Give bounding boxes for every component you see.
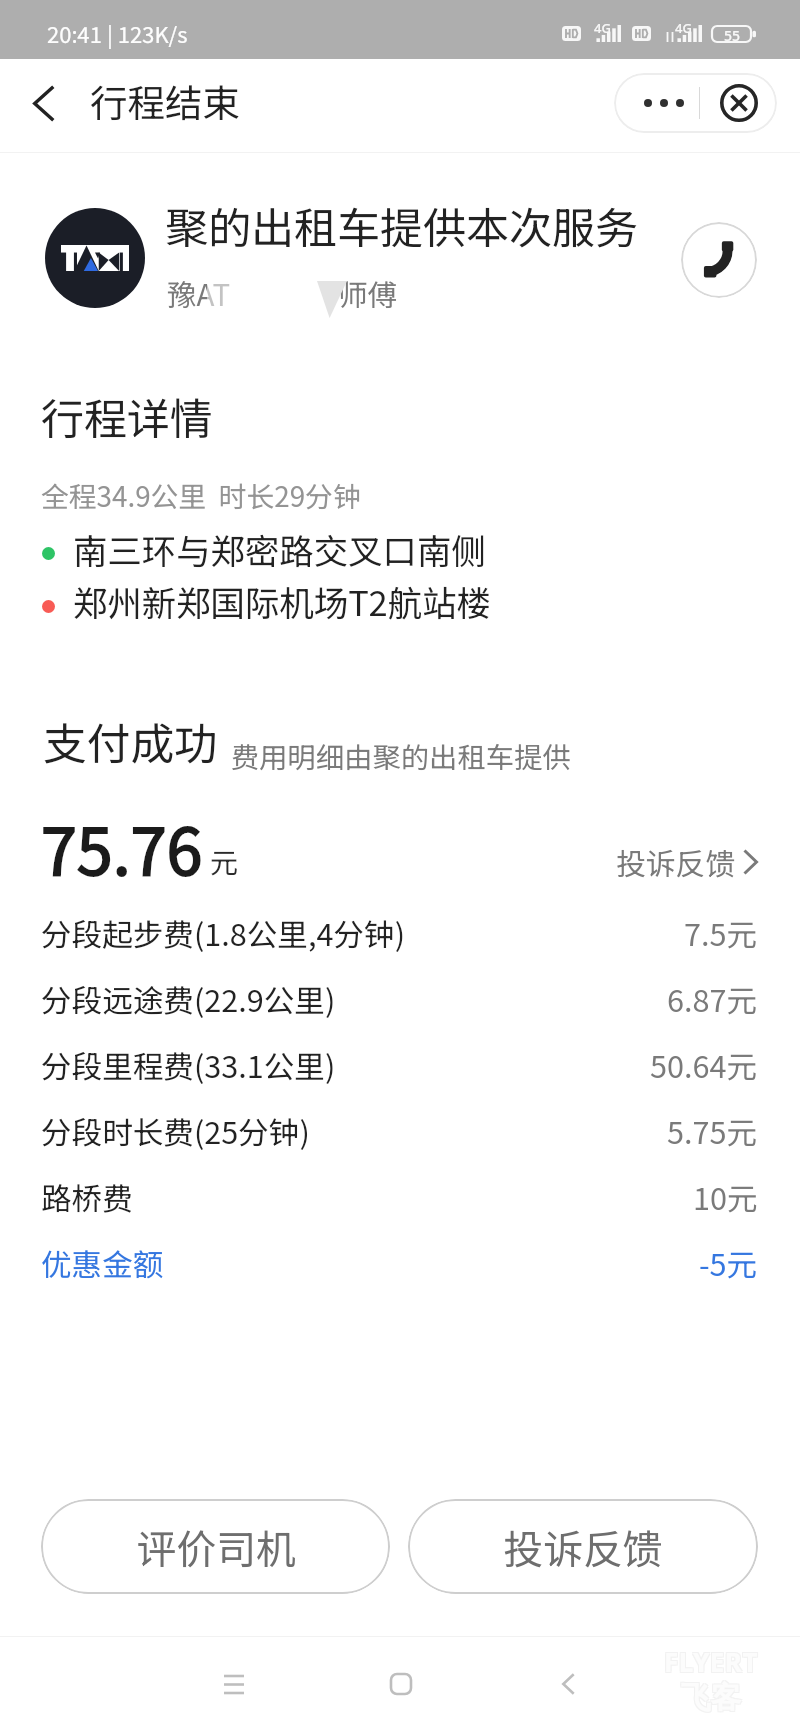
staticText: FLYERT	[663, 1643, 757, 1678]
staticText: 投诉反馈	[503, 1518, 663, 1576]
button[interactable]: 投诉反馈	[408, 1499, 758, 1594]
staticText: 费用明细由聚的出租车提供	[231, 735, 571, 776]
staticText: 飞客	[682, 1680, 742, 1718]
staticText: 元	[210, 841, 239, 882]
staticText: 4G	[675, 19, 692, 37]
staticText: 师傅	[338, 272, 398, 315]
staticText: 投诉反馈	[616, 840, 736, 883]
button[interactable]: 投诉反馈	[616, 840, 758, 883]
button[interactable]: 评价司机	[41, 1499, 390, 1594]
staticText: 55	[724, 26, 741, 42]
staticText: 分段时长费(25分钟)	[41, 1109, 310, 1153]
staticText: 全程34.9公里 时长29分钟	[41, 475, 361, 515]
button[interactable]: Back	[10, 69, 78, 137]
staticText: 飞客	[682, 1678, 742, 1716]
staticText: 支付成功	[43, 709, 218, 772]
button[interactable]: Close	[700, 73, 777, 133]
staticText: FLYERT	[665, 1645, 759, 1680]
button[interactable]: Recents	[184, 1634, 284, 1733]
staticText: 5.75元	[667, 1109, 758, 1153]
staticText: 分段远途费(22.9公里)	[41, 977, 336, 1021]
staticText: 路桥费	[41, 1175, 133, 1219]
staticText: 行程结束	[90, 73, 240, 127]
staticText: 分段起步费(1.8公里,4分钟)	[41, 911, 405, 955]
staticText: FLYERT	[664, 1644, 758, 1679]
staticText: 20:41 | 123K/s	[47, 17, 188, 49]
button[interactable]: Back	[518, 1634, 618, 1733]
staticText: 豫AT	[167, 272, 231, 315]
staticText: 南三环与郑密路交叉口南侧	[73, 524, 486, 574]
staticText: 75.76	[41, 800, 203, 894]
staticText: 10元	[693, 1175, 758, 1219]
staticText: 行程详情	[41, 385, 213, 447]
staticText: FLYERT	[663, 1645, 757, 1680]
button[interactable]: Home	[351, 1634, 451, 1733]
staticText: 4G	[594, 19, 611, 37]
staticText: 飞客	[680, 1678, 740, 1716]
button[interactable]: Call driver	[681, 222, 757, 298]
staticText: 6.87元	[667, 977, 758, 1021]
staticText: 优惠金额	[41, 1241, 164, 1285]
staticText: 郑州新郑国际机场T2航站楼	[73, 576, 491, 626]
staticText: FLYERT	[665, 1643, 759, 1678]
staticText: -5元	[699, 1241, 758, 1285]
staticText: 聚的出租车提供本次服务	[165, 194, 638, 256]
staticText: 7.5元	[684, 911, 758, 955]
staticText: 飞客	[680, 1680, 740, 1718]
staticText: 评价司机	[136, 1518, 296, 1576]
staticText: 分段里程费(33.1公里)	[41, 1043, 336, 1087]
staticText: 飞客	[681, 1679, 741, 1717]
button[interactable]: More options	[614, 73, 699, 133]
staticText: 50.64元	[650, 1043, 758, 1087]
